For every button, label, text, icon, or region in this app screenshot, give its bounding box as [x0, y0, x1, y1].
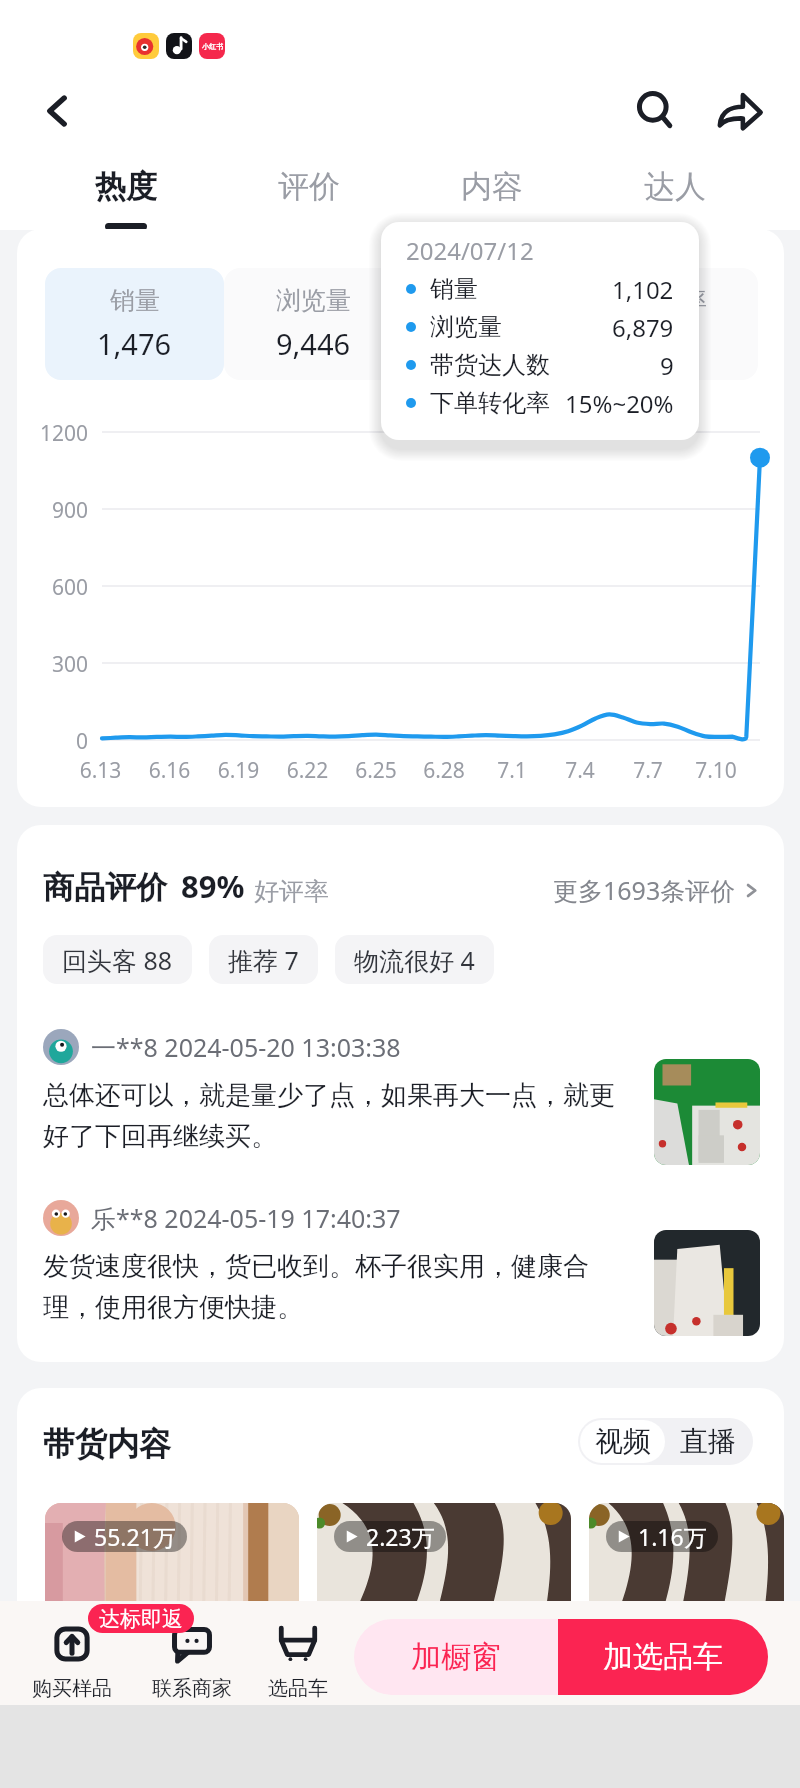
- staticText: 达人数: [454, 285, 529, 316]
- button[interactable]: 2.23万: [317, 1503, 571, 1703]
- staticText: 热度: [95, 167, 157, 206]
- staticText: 选品车: [268, 1676, 328, 1701]
- staticText: 小红书: [202, 42, 223, 51]
- staticText: 内容: [461, 167, 523, 206]
- staticText: 900: [52, 496, 89, 525]
- button[interactable]: Share: [708, 79, 772, 143]
- staticText: 发货速度很快，货已收到。杯子很实用，健康合理，使用很方便快捷。: [43, 1250, 636, 1323]
- button[interactable]: 热度: [35, 167, 217, 230]
- staticText: 6.25: [342, 756, 410, 785]
- button[interactable]: 评价: [217, 167, 400, 230]
- button[interactable]: 物流很好 4: [335, 935, 494, 984]
- staticText: 更多1693条评价: [553, 873, 736, 907]
- staticText: 6.22: [273, 756, 342, 785]
- staticText: 商品评价: [43, 868, 167, 907]
- button[interactable]: 推荐 7: [209, 935, 318, 984]
- staticText: 7.1: [478, 756, 546, 785]
- button[interactable]: 直播: [665, 1420, 751, 1463]
- staticText: 6.16: [135, 756, 204, 785]
- button[interactable]: 视频: [580, 1420, 665, 1463]
- staticText: 一**8 2024-05-20 13:03:38: [91, 1030, 401, 1064]
- staticText: 1200: [40, 419, 89, 448]
- staticText: 6,879: [612, 311, 674, 343]
- staticText: 1,102: [612, 273, 674, 305]
- button[interactable]: 内容: [400, 167, 583, 230]
- staticText: 购买样品: [32, 1676, 112, 1701]
- staticText: 55.21万: [94, 1521, 176, 1552]
- staticText: 推荐 7: [228, 943, 299, 977]
- staticText: 浏览量: [430, 312, 502, 342]
- button[interactable]: 回头客 88: [43, 935, 192, 984]
- staticText: 加选品车: [603, 1638, 723, 1676]
- staticText: 视频: [595, 1424, 651, 1459]
- staticText: 89%: [181, 865, 245, 907]
- staticText: 7.10: [682, 756, 750, 785]
- staticText: 总体还可以，就是量少了点，如果再大一点，就更好了下回再继续买。: [43, 1079, 636, 1152]
- staticText: 1.16万: [638, 1521, 707, 1552]
- staticText: 达人: [644, 167, 706, 206]
- staticText: 评价: [278, 167, 340, 206]
- staticText: 300: [52, 650, 89, 679]
- staticText: 15%~20%: [565, 387, 674, 419]
- staticText: 7.7: [614, 756, 682, 785]
- staticText: 6.13: [66, 756, 135, 785]
- staticText: 乐**8 2024-05-19 17:40:37: [91, 1201, 401, 1235]
- button[interactable]: 1.16万: [589, 1503, 784, 1703]
- staticText: 带货达人数: [430, 350, 550, 380]
- staticText: 6.19: [204, 756, 273, 785]
- staticText: 联系商家: [152, 1676, 232, 1701]
- staticText: 物流很好 4: [354, 943, 475, 977]
- button[interactable]: 销量: [45, 268, 224, 380]
- staticText: 下单转化率: [430, 388, 550, 418]
- staticText: 7.4: [546, 756, 614, 785]
- staticText: 9,446: [276, 324, 351, 363]
- button[interactable]: 联系商家: [132, 1624, 252, 1701]
- button[interactable]: 更多1693条评价: [553, 873, 760, 907]
- staticText: 600: [52, 573, 89, 602]
- button[interactable]: 达人: [583, 167, 766, 230]
- staticText: 达标即返: [99, 1606, 183, 1632]
- staticText: 加橱窗: [411, 1638, 501, 1676]
- button[interactable]: 购买样品: [12, 1624, 132, 1701]
- button[interactable]: 达人数: [402, 268, 580, 380]
- staticText: 6.28: [410, 756, 478, 785]
- staticText: 好评率: [254, 876, 329, 907]
- button[interactable]: 加橱窗: [354, 1619, 558, 1695]
- button[interactable]: 55.21万: [45, 1503, 299, 1703]
- staticText: 直播: [680, 1424, 736, 1459]
- staticText: 15%: [641, 324, 699, 363]
- staticText: 转化率: [632, 285, 707, 316]
- staticText: 浏览量: [276, 285, 351, 316]
- button[interactable]: 浏览量: [224, 268, 402, 380]
- button[interactable]: 转化率: [580, 268, 758, 380]
- staticText: 9: [483, 324, 500, 363]
- button[interactable]: Search: [624, 79, 688, 143]
- staticText: 销量: [430, 274, 478, 304]
- button[interactable]: 选品车: [238, 1624, 358, 1701]
- staticText: 回头客 88: [62, 943, 173, 977]
- button[interactable]: Back: [25, 79, 89, 143]
- staticText: 2024/07/12: [406, 234, 534, 267]
- staticText: 销量: [110, 285, 160, 316]
- button[interactable]: 加选品车: [558, 1619, 768, 1695]
- staticText: 1,476: [97, 324, 172, 363]
- staticText: 9: [660, 349, 674, 381]
- staticText: 带货内容: [43, 1424, 171, 1464]
- staticText: 2.23万: [366, 1521, 435, 1552]
- staticText: 0: [76, 727, 89, 756]
